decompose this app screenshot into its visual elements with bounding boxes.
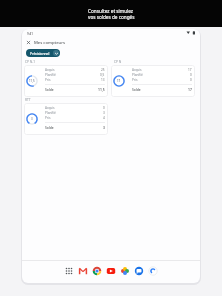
button[interactable]: [119, 265, 131, 277]
staticText: 9:41: [27, 32, 33, 36]
staticText: 0: [103, 106, 105, 110]
staticText: Solde: [45, 125, 54, 129]
staticText: 11,5: [98, 87, 105, 91]
staticText: Planifié: [45, 73, 56, 77]
staticText: 11,5: [29, 79, 35, 83]
staticText: CP N-1: [25, 60, 36, 64]
staticText: 17: [188, 68, 192, 72]
button[interactable]: 3: [24, 103, 108, 135]
staticText: CP N: [114, 60, 122, 64]
staticText: Pris: [45, 78, 51, 82]
button[interactable]: [105, 265, 117, 277]
staticText: RTT: [25, 98, 31, 102]
staticText: Planifié: [132, 73, 143, 77]
staticText: 17: [188, 87, 192, 91]
button[interactable]: 17: [111, 65, 195, 97]
staticText: Pris: [45, 116, 51, 120]
staticText: Solde: [45, 87, 54, 91]
button[interactable]: [63, 265, 75, 277]
staticText: Acquis: [45, 106, 55, 110]
button[interactable]: [147, 265, 159, 277]
staticText: Acquis: [45, 68, 55, 72]
staticText: 3: [31, 117, 33, 121]
staticText: 13: [101, 78, 105, 82]
button[interactable]: Prévisionnel: [26, 49, 60, 57]
staticText: Consultez et simulez: [88, 8, 134, 14]
staticText: vos soldes de congés: [88, 14, 135, 20]
staticText: Planifié: [45, 111, 56, 115]
staticText: Solde: [132, 87, 141, 91]
staticText: 17: [117, 79, 121, 83]
staticText: Acquis: [132, 68, 142, 72]
staticText: Prévisionnel: [30, 51, 50, 56]
button[interactable]: [91, 265, 103, 277]
staticText: 0: [190, 73, 192, 77]
staticText: Pris: [132, 78, 138, 82]
staticText: 3: [103, 111, 105, 115]
staticText: 25: [101, 68, 105, 72]
staticText: 0,5: [100, 73, 105, 77]
button[interactable]: [24, 38, 32, 46]
staticText: 4: [103, 116, 105, 120]
staticText: 3: [103, 125, 105, 129]
button[interactable]: [133, 265, 145, 277]
button[interactable]: 11,5: [24, 65, 108, 97]
staticText: 0: [190, 78, 192, 82]
button[interactable]: [77, 265, 89, 277]
staticText: Mes compteurs: [34, 40, 65, 46]
